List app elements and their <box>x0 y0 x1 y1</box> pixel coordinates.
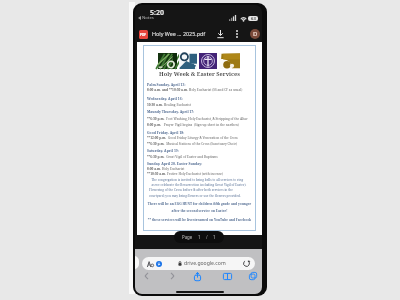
button[interactable]: Account <box>250 29 260 39</box>
staticText: Holy Week & Easter Services <box>143 70 256 78</box>
staticText: Sunday, April 20, Easter Sunday: <box>147 161 203 166</box>
staticText: **10:30 a.m. Festive Holy Eucharist (wit… <box>147 172 224 176</box>
button[interactable]: Download <box>213 27 227 41</box>
staticText: 8:00 p.m. Prayer Vigil begins (Sign-up s… <box>147 123 239 127</box>
staticText: **6:30 p.m. Great Vigil of Easter and Ba… <box>147 155 218 159</box>
staticText: 1 <box>213 234 216 240</box>
staticText: 1 <box>198 234 201 240</box>
staticText: Maundy Thursday, April 17: <box>147 109 195 114</box>
staticText: 63 <box>251 16 256 21</box>
staticText: courtyard; you may bring flowers or use … <box>149 194 241 198</box>
staticText: There will be an EGG HUNT for children f… <box>143 202 256 206</box>
staticText: Page <box>182 234 193 240</box>
staticText: ** these services will be livestreamed o… <box>143 218 256 222</box>
button[interactable]: Share <box>187 268 207 284</box>
staticText: drive.google.com <box>184 260 226 267</box>
button[interactable]: Back to Notes <box>138 15 154 21</box>
staticText: **6:30 p.m. Musical Stations of the Cros… <box>147 142 238 146</box>
staticText: Notes <box>142 15 154 21</box>
staticText: 10:30 a.m. Healing Eucharist <box>147 103 191 107</box>
staticText: / <box>206 234 208 240</box>
staticText: Good Friday, April 18: <box>147 130 185 135</box>
staticText: 5:20 <box>150 8 164 18</box>
staticText: 8:00 a.m. Holy Eucharist <box>147 167 185 171</box>
staticText: Palm Sunday, April 13: <box>147 82 186 87</box>
staticText: **6:30 p.m. Foot Washing, Holy Eucharist… <box>147 117 248 121</box>
staticText: The congregation is invited to bring bel… <box>149 178 244 182</box>
button[interactable]: drive.google.com <box>142 257 255 270</box>
staticText: as we celebrate the Resurrection includi… <box>149 183 247 187</box>
staticText: after the second service on Easter! <box>143 209 256 213</box>
staticText: D <box>253 30 258 38</box>
button[interactable]: Back <box>136 268 156 284</box>
staticText: Flowering of the Cross before & after bo… <box>149 188 233 192</box>
staticText: Saturday, April 19: <box>147 148 179 153</box>
button[interactable]: More options <box>230 27 244 41</box>
staticText: PDF <box>140 33 147 37</box>
staticText: Holy Wee ... 2025.pdf <box>152 30 206 37</box>
button[interactable]: Bookmarks <box>217 268 237 284</box>
staticText: 8:00 a.m. and **10:30 a.m. Holy Eucharis… <box>147 88 243 92</box>
staticText: Wednesday, April 16: <box>147 96 183 101</box>
button[interactable]: Tabs <box>243 268 262 284</box>
staticText: **12:00 p.m. Good Friday Liturgy & Vener… <box>147 136 238 140</box>
button[interactable]: Forward <box>162 268 182 284</box>
button[interactable]: Page <box>174 231 224 243</box>
